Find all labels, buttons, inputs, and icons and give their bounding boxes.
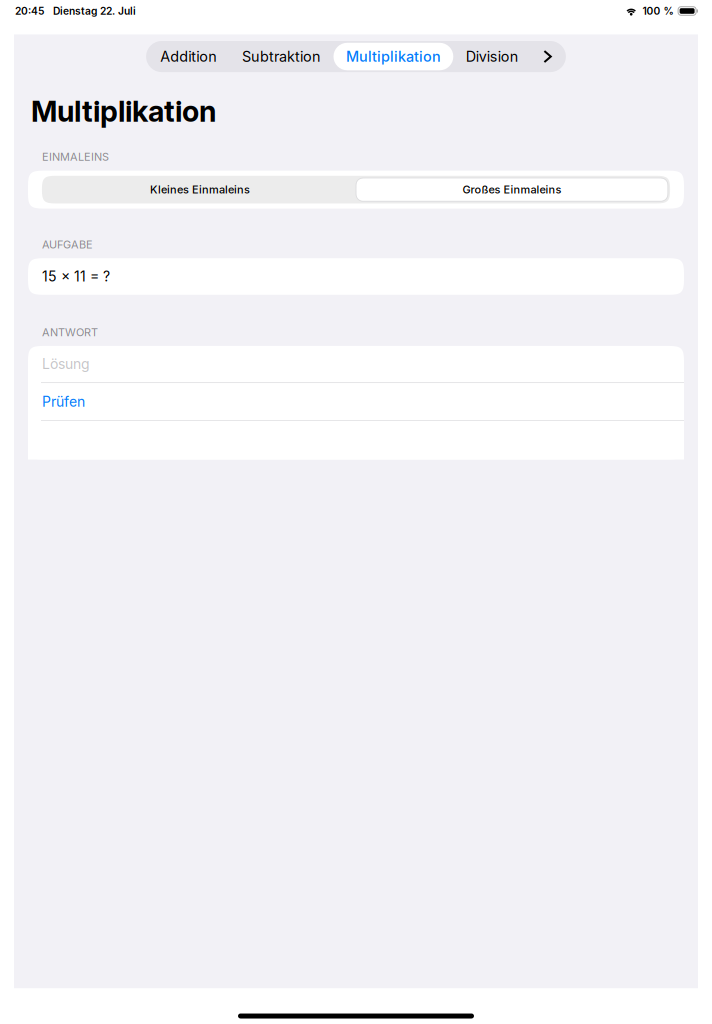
button[interactable]: Prüfen <box>28 383 684 420</box>
staticText: Multiplikation <box>31 94 216 129</box>
button[interactable]: Kleines Einmaleins <box>44 178 356 201</box>
button[interactable]: Multiplikation <box>333 43 453 70</box>
staticText: Kleines Einmaleins <box>150 183 250 196</box>
staticText: 15 × 11 = ? <box>42 268 110 285</box>
staticText: Großes Einmaleins <box>462 183 561 196</box>
staticText: ANTWORT <box>42 326 98 339</box>
staticText: 100 % <box>643 5 674 17</box>
button[interactable]: Addition <box>148 43 230 70</box>
button[interactable]: Division <box>453 43 531 70</box>
button[interactable]: Großes Einmaleins <box>356 178 668 201</box>
staticText: 20:45 <box>15 5 44 17</box>
staticText: EINMALEINS <box>42 150 109 163</box>
staticText: Subtraktion <box>242 48 321 65</box>
staticText: Multiplikation <box>346 48 441 65</box>
staticText: Division <box>466 48 519 65</box>
staticText: Prüfen <box>42 393 85 410</box>
staticText: Addition <box>160 48 217 65</box>
button[interactable]: Subtraktion <box>230 43 333 70</box>
staticText: Lösung <box>42 355 90 372</box>
staticText: Dienstag 22. Juli <box>53 5 136 17</box>
button[interactable]: Weitere Rechenarten <box>531 43 564 70</box>
staticText: AUFGABE <box>42 238 93 251</box>
